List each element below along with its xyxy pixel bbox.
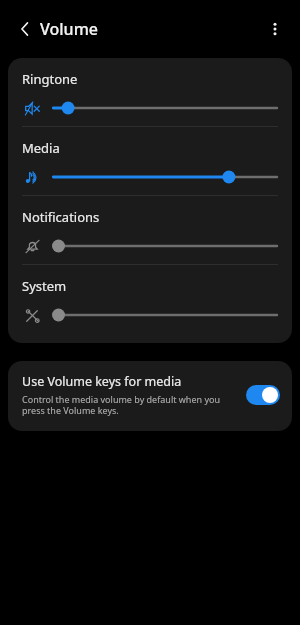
staticText: Media [22, 139, 60, 157]
staticText: Volume [40, 18, 98, 40]
button[interactable]: Ringtone [8, 58, 292, 126]
button[interactable]: More options [258, 12, 292, 46]
button[interactable]: System [8, 265, 292, 333]
button[interactable]: Use Volume keys for media [8, 361, 292, 431]
staticText: System [22, 277, 67, 295]
staticText: Use Volume keys for media [22, 373, 182, 390]
staticText: Control the media volume by default when… [22, 393, 238, 417]
button[interactable]: Back [8, 12, 42, 46]
button[interactable]: Use Volume keys for media toggle [246, 385, 280, 405]
staticText: Notifications [22, 208, 100, 226]
button[interactable]: Notifications [8, 196, 292, 264]
button[interactable]: Media [8, 127, 292, 195]
staticText: Ringtone [22, 70, 78, 88]
